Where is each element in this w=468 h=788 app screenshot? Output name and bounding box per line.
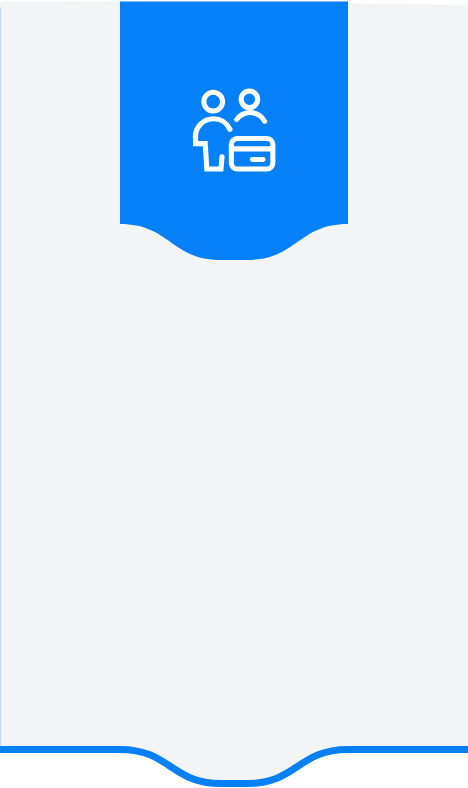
button[interactable]: Shared payment bbox=[0, 0, 468, 788]
